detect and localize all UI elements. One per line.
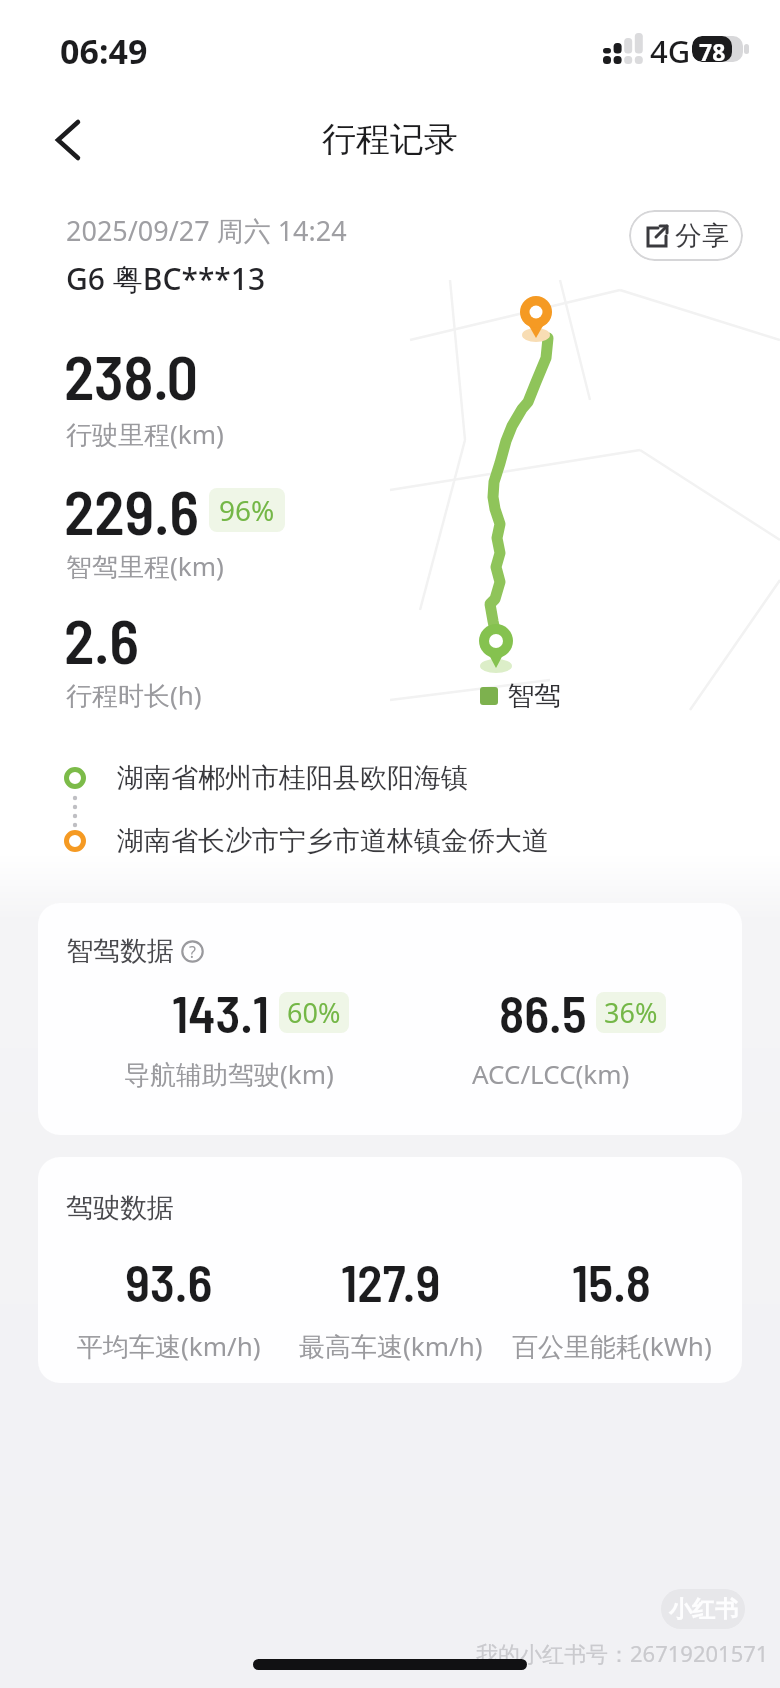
- button[interactable]: 分享: [629, 210, 743, 261]
- staticText: 行程时长(h): [66, 677, 202, 713]
- staticText: 238.0: [64, 338, 198, 412]
- staticText: 4G: [650, 30, 691, 72]
- staticText: 智驾数据: [66, 934, 174, 968]
- staticText: 60%: [287, 994, 341, 1031]
- staticText: 智驾: [507, 679, 561, 713]
- staticText: 智驾里程(km): [66, 548, 224, 584]
- staticText: 127.9: [341, 1250, 441, 1312]
- staticText: 15.8: [572, 1250, 651, 1312]
- staticText: 229.6: [64, 473, 199, 547]
- staticText: ?: [189, 941, 196, 963]
- staticText: 78: [699, 36, 726, 62]
- staticText: 湖南省长沙市宁乡市道林镇金侨大道: [117, 824, 549, 858]
- staticText: 06:49: [60, 28, 148, 74]
- staticText: 2.6: [64, 602, 139, 676]
- staticText: 百公里能耗(kWh): [512, 1328, 712, 1364]
- staticText: 分享: [675, 219, 729, 253]
- staticText: 最高车速(km/h): [299, 1328, 483, 1364]
- staticText: 行驶里程(km): [66, 416, 224, 452]
- staticText: 驾驶数据: [66, 1191, 174, 1225]
- staticText: 行程记录: [0, 118, 780, 161]
- staticText: 96%: [219, 491, 275, 529]
- staticText: 93.6: [125, 1250, 213, 1312]
- staticText: 小红书: [669, 1595, 738, 1624]
- staticText: 平均车速(km/h): [77, 1328, 261, 1364]
- staticText: 86.5: [499, 981, 587, 1043]
- staticText: 2025/09/27 周六 14:24: [66, 212, 347, 249]
- button[interactable]: 智驾数据: [38, 903, 742, 1135]
- staticText: G6 粤BC***13: [66, 258, 266, 299]
- staticText: 36%: [604, 994, 658, 1031]
- staticText: ACC/LCC(km): [472, 1056, 630, 1091]
- staticText: 143.1: [172, 981, 270, 1043]
- staticText: 湖南省郴州市桂阳县欧阳海镇: [117, 761, 468, 795]
- button[interactable]: [40, 108, 104, 172]
- staticText: 导航辅助驾驶(km): [124, 1056, 334, 1092]
- button[interactable]: 驾驶数据: [38, 1157, 742, 1383]
- staticText: 我的小红书号：26719201571: [476, 1638, 769, 1668]
